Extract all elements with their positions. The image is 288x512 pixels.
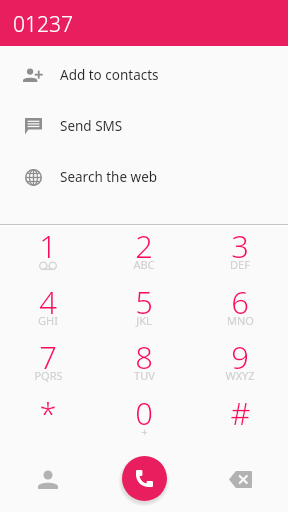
button[interactable]: 7 [0,335,96,390]
button[interactable]: Add to contacts [0,49,288,100]
staticText: Send SMS [60,117,123,135]
button[interactable]: 0 [96,391,192,446]
button[interactable]: 9 [192,335,288,390]
button[interactable]: 4 [0,280,96,335]
staticText: 9 [231,336,249,378]
staticText: Add to contacts [60,66,159,84]
staticText: 4 [39,281,57,323]
staticText: 2 [135,225,153,267]
staticText: Search the web [60,168,158,186]
staticText: 8 [135,336,153,378]
staticText: 6 [231,281,249,323]
staticText: # [230,392,251,434]
staticText: + [141,424,148,439]
staticText: 0 [135,392,153,434]
staticText: 01237 [13,10,73,39]
button[interactable]: # [192,391,288,446]
staticText: GHI [38,313,58,328]
staticText: WXYZ [225,368,255,383]
staticText: 1 [39,225,57,267]
button[interactable]: 2 [96,224,192,279]
button[interactable]: 1 [0,224,96,279]
button[interactable]: * [0,391,96,446]
button[interactable]: Call [122,456,167,501]
button[interactable]: 8 [96,335,192,390]
button[interactable]: Backspace [208,447,272,511]
staticText: TUV [134,368,155,383]
staticText: 3 [231,225,249,267]
staticText: 5 [135,281,153,323]
staticText: 7 [39,336,57,378]
button[interactable]: Search the web [0,151,288,202]
staticText: PQRS [34,368,63,383]
staticText: MNO [227,313,254,328]
button[interactable]: 5 [96,280,192,335]
button[interactable]: Send SMS [0,100,288,151]
staticText: DEF [230,257,250,272]
staticText: ABC [133,257,155,272]
button[interactable]: 6 [192,280,288,335]
staticText: JKL [136,313,152,328]
button[interactable]: 3 [192,224,288,279]
button[interactable]: Contacts [16,447,80,511]
staticText: * [39,392,57,434]
